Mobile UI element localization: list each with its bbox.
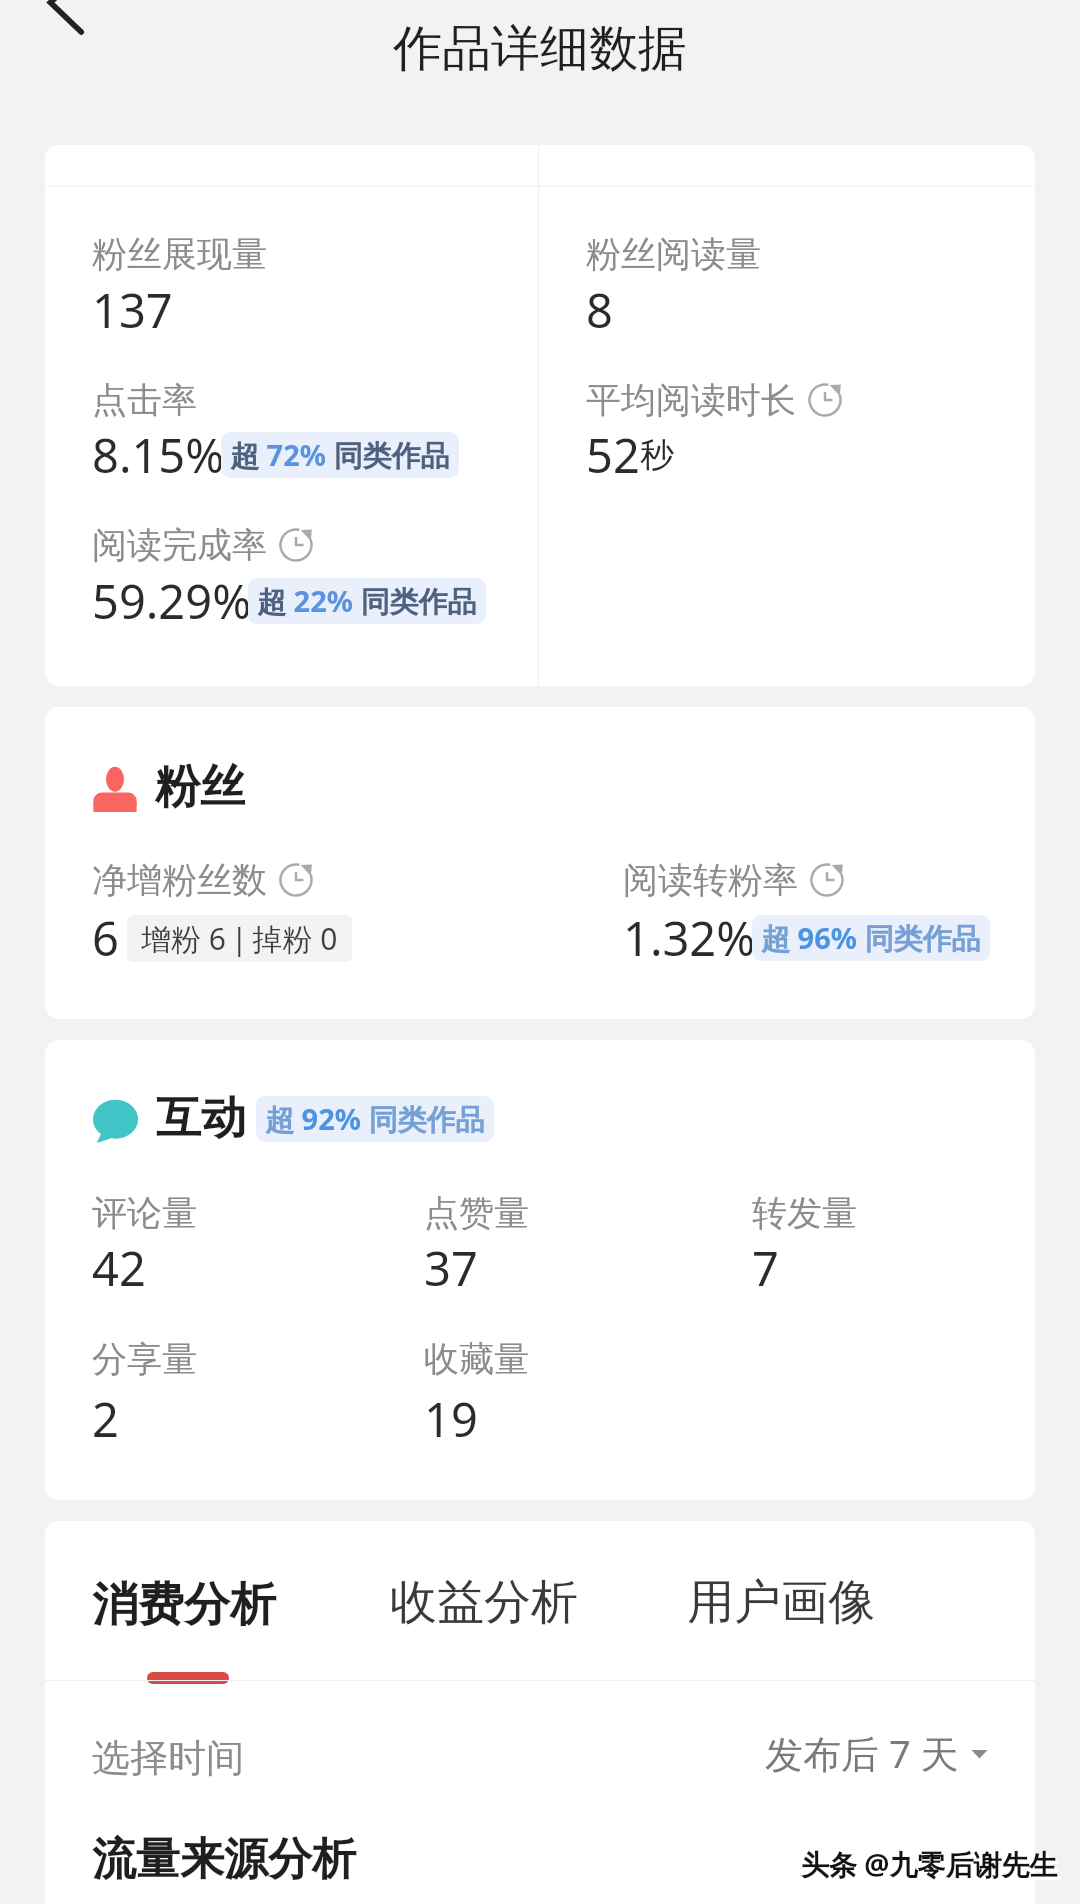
staticText: 粉丝阅读量	[586, 232, 761, 276]
staticText: 7	[752, 1236, 779, 1300]
staticText: 粉丝展现量	[92, 232, 267, 276]
staticText: 头条 @九零后谢先生	[801, 1845, 1058, 1883]
staticText: 19	[424, 1387, 478, 1451]
staticText: 评论量	[92, 1191, 197, 1235]
staticText: 阅读转粉率	[623, 858, 798, 902]
staticText: 净增粉丝数	[92, 858, 267, 902]
button[interactable]: Back	[33, 0, 100, 36]
button[interactable]: 收益分析	[390, 1576, 578, 1685]
staticText: 粉丝	[155, 759, 245, 816]
staticText: 点击率	[92, 378, 197, 422]
staticText: 平均阅读时长	[586, 378, 796, 422]
staticText: 转发量	[752, 1191, 857, 1235]
staticText: 超 92% 同类作品	[265, 1099, 485, 1139]
button[interactable]: 用户画像	[687, 1576, 875, 1685]
staticText: 消费分析	[92, 1576, 276, 1634]
staticText: 选择时间	[92, 1734, 244, 1782]
staticText: 收藏量	[424, 1337, 529, 1381]
staticText: 头条 @九零后谢先生	[804, 1848, 1061, 1886]
staticText: 流量来源分析	[92, 1832, 356, 1887]
staticText: 6	[92, 906, 119, 970]
staticText: 52	[586, 423, 640, 487]
staticText: 超 72% 同类作品	[230, 435, 450, 475]
staticText: 点赞量	[424, 1191, 529, 1235]
staticText: 用户画像	[687, 1573, 875, 1632]
staticText: 分享量	[92, 1337, 197, 1381]
staticText: 收益分析	[390, 1573, 578, 1632]
staticText: 超 22% 同类作品	[257, 581, 477, 621]
staticText: 2	[92, 1387, 119, 1451]
staticText: 42	[92, 1236, 146, 1300]
staticText: 8	[586, 278, 613, 342]
staticText: 互动	[156, 1090, 246, 1147]
staticText: 秒	[640, 434, 674, 477]
staticText: 增粉 6 | 掉粉 0	[141, 918, 338, 959]
staticText: 超 96% 同类作品	[761, 918, 981, 958]
staticText: 阅读完成率	[92, 523, 267, 567]
staticText: 作品详细数据	[393, 18, 687, 80]
staticText: 37	[424, 1236, 478, 1300]
staticText: 59.29%	[92, 569, 252, 633]
button[interactable]: 消费分析	[92, 1576, 276, 1684]
staticText: 1.32%	[623, 906, 756, 970]
staticText: 8.15%	[92, 423, 225, 487]
staticText: 137	[92, 278, 173, 342]
button[interactable]: 发布后 7 天	[765, 1727, 988, 1779]
staticText: 发布后 7 天	[765, 1727, 959, 1779]
